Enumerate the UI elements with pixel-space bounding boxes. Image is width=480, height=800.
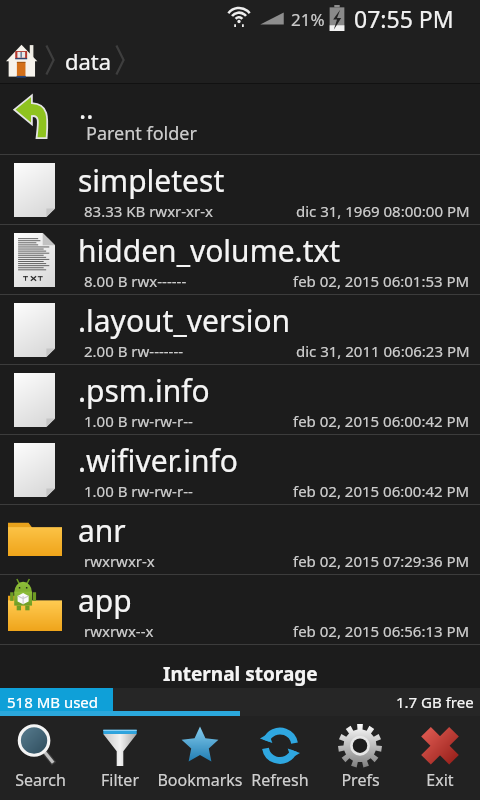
button[interactable]: data — [0, 36, 480, 84]
button[interactable]: anr — [0, 505, 480, 575]
staticText: data — [65, 46, 112, 76]
button[interactable]: .psm.info — [0, 365, 480, 435]
staticText: feb 02, 2015 07:29:36 PM — [293, 551, 470, 571]
staticText: Refresh — [251, 769, 309, 791]
staticText: 07:55 PM — [354, 3, 454, 34]
button[interactable]: 518 MB used — [0, 688, 480, 716]
button[interactable]: .layout_version — [0, 295, 480, 365]
staticText: Bookmarks — [157, 769, 243, 791]
staticText: 2.00 B rw------- — [84, 341, 184, 361]
staticText: Parent folder — [86, 121, 197, 146]
staticText: Search — [15, 769, 66, 791]
staticText: Filter — [101, 769, 139, 791]
staticText: 8.00 B rwx------ — [84, 271, 187, 291]
button[interactable]: .. — [0, 84, 480, 155]
staticText: feb 02, 2015 06:00:42 PM — [293, 481, 470, 501]
button[interactable]: Prefs — [320, 716, 400, 800]
staticText: simpletest — [78, 160, 225, 201]
staticText: .wifiver.info — [78, 440, 238, 481]
staticText: 1.00 B rw-rw-r-- — [84, 481, 193, 501]
button[interactable]: hidden_volume.txt — [0, 225, 480, 295]
staticText: hidden_volume.txt — [78, 230, 341, 271]
button[interactable]: Exit — [400, 716, 480, 800]
staticText: 83.33 KB rwxr-xr-x — [84, 201, 214, 221]
button[interactable]: Filter — [80, 716, 160, 800]
staticText: Exit — [426, 769, 454, 791]
staticText: anr — [78, 510, 126, 551]
staticText: .. — [79, 90, 94, 127]
button[interactable]: app — [0, 575, 480, 645]
button[interactable]: .wifiver.info — [0, 435, 480, 505]
staticText: feb 02, 2015 06:00:42 PM — [293, 411, 470, 431]
staticText: dic 31, 1969 08:00:00 PM — [296, 201, 470, 221]
staticText: Prefs — [341, 769, 380, 791]
staticText: dic 31, 2011 06:06:23 PM — [296, 341, 470, 361]
staticText: .layout_version — [78, 300, 291, 341]
staticText: 518 MB used — [7, 692, 99, 712]
staticText: app — [78, 580, 132, 621]
staticText: rwxrwxr-x — [84, 551, 155, 571]
staticText: 1.7 GB free — [396, 692, 474, 712]
staticText: Internal storage — [163, 661, 318, 687]
staticText: 1.00 B rw-rw-r-- — [84, 411, 193, 431]
staticText: .psm.info — [78, 370, 210, 411]
button[interactable]: Search — [0, 716, 80, 800]
staticText: 21% — [291, 8, 325, 31]
staticText: feb 02, 2015 06:01:53 PM — [293, 271, 470, 291]
staticText: rwxrwx--x — [84, 621, 154, 641]
button[interactable]: simpletest — [0, 155, 480, 225]
staticText: feb 02, 2015 06:56:13 PM — [293, 621, 470, 641]
button[interactable]: Refresh — [240, 716, 320, 800]
button[interactable]: Bookmarks — [160, 716, 240, 800]
